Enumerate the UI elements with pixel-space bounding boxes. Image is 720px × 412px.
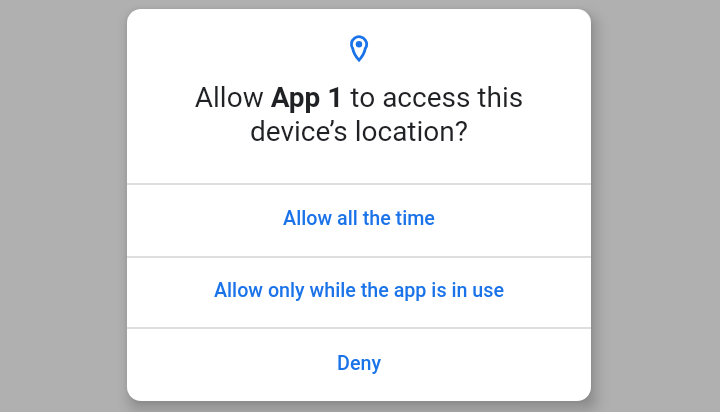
staticText: Allow only while the app is in use — [127, 279, 591, 302]
staticText: Allow App 1 to access this — [127, 81, 591, 114]
staticText: Deny — [127, 352, 591, 375]
staticText: Allow all the time — [127, 207, 591, 230]
staticText: device’s location? — [127, 115, 591, 148]
button[interactable]: Allow only while the app is in use — [127, 257, 591, 327]
button[interactable]: Allow all the time — [127, 184, 591, 256]
button[interactable]: Deny — [127, 328, 591, 401]
